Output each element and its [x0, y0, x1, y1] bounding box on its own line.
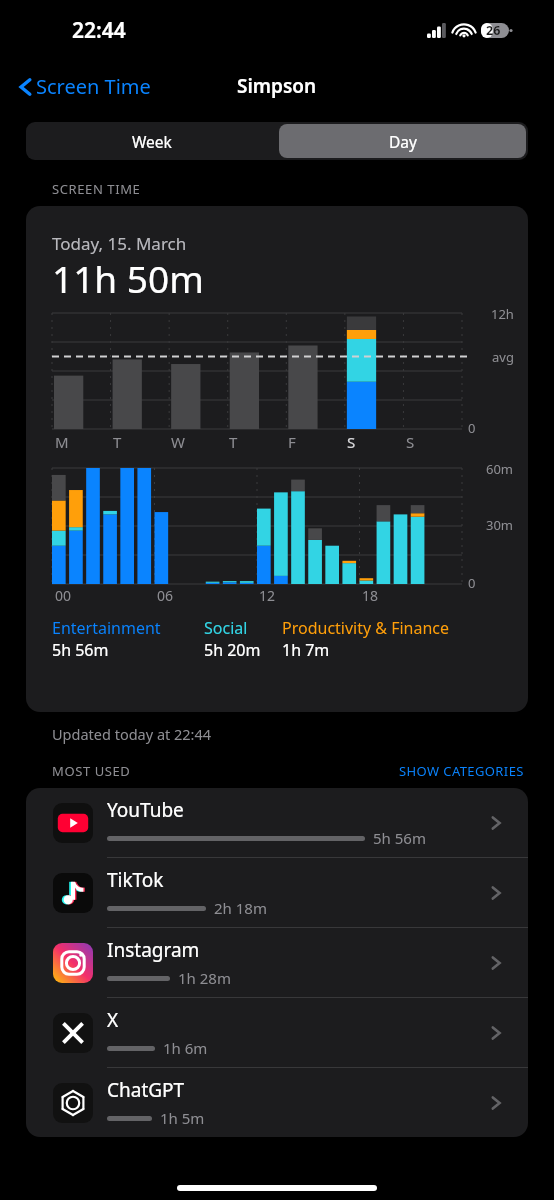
staticText: X	[107, 1007, 119, 1033]
staticText: Screen Time	[36, 73, 151, 100]
staticText: Week	[132, 131, 172, 152]
staticText: 12h	[491, 305, 514, 323]
staticText: Day	[389, 131, 417, 152]
button[interactable]: Screen Time	[14, 73, 151, 100]
staticText: 0	[468, 574, 476, 592]
button[interactable]: YouTube	[26, 788, 528, 857]
button[interactable]: X	[26, 998, 528, 1067]
staticText: SHOW CATEGORIES	[399, 762, 524, 780]
button[interactable]: ChatGPT	[26, 1068, 528, 1137]
staticText: Updated today at 22:44	[52, 724, 212, 744]
staticText: 60m	[486, 460, 514, 478]
staticText: 1h 28m	[178, 968, 231, 988]
button[interactable]: Day	[279, 124, 526, 158]
staticText: 5h 20m	[204, 639, 261, 661]
staticText: T	[113, 432, 122, 452]
staticText: 11h 50m	[52, 253, 204, 303]
staticText: F	[288, 432, 296, 452]
staticText: YouTube	[107, 797, 184, 823]
staticText: 2h 18m	[214, 898, 267, 918]
staticText: 06	[157, 586, 174, 605]
staticText: 30m	[486, 516, 514, 534]
button[interactable]: TikTok	[26, 858, 528, 927]
button[interactable]: Week	[26, 122, 277, 160]
staticText: Instagram	[107, 937, 200, 963]
staticText: Entertainment	[52, 617, 161, 639]
staticText: 12	[259, 586, 276, 605]
staticText: S	[406, 432, 415, 452]
staticText: TikTok	[107, 867, 164, 893]
staticText: avg	[492, 348, 514, 366]
staticText: 5h 56m	[52, 639, 109, 661]
staticText: 5h 56m	[373, 828, 426, 848]
staticText: 22:44	[72, 16, 126, 45]
staticText: Simpson	[237, 73, 317, 99]
staticText: 1h 7m	[282, 639, 330, 661]
button[interactable]: Instagram	[26, 928, 528, 997]
staticText: S	[347, 432, 356, 452]
staticText: 26	[486, 22, 501, 39]
staticText: 00	[55, 586, 72, 605]
button[interactable]: SHOW CATEGORIES	[399, 762, 524, 780]
staticText: M	[55, 432, 69, 452]
staticText: MOST USED	[52, 762, 131, 780]
staticText: 18	[362, 586, 379, 605]
staticText: T	[229, 432, 238, 452]
staticText: 1h 6m	[163, 1038, 208, 1058]
staticText: SCREEN TIME	[52, 180, 141, 198]
staticText: Today, 15. March	[52, 232, 187, 255]
staticText: 0	[468, 419, 476, 437]
staticText: 1h 5m	[160, 1108, 205, 1128]
staticText: Social	[204, 617, 248, 639]
staticText: W	[171, 432, 185, 452]
staticText: Productivity & Finance	[282, 617, 450, 639]
staticText: ChatGPT	[107, 1077, 185, 1103]
